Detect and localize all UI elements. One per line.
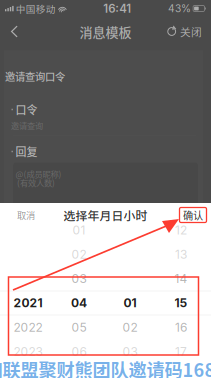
staticText: 2021 [13,296,42,310]
staticText: 14 [174,271,187,286]
staticText: 03 [122,344,137,359]
staticText: 02 [122,320,137,334]
staticText: 邀请查询口令 [5,69,65,84]
button[interactable]: Back [0,17,29,46]
staticText: 中国移动 [16,1,56,15]
staticText: 佣联盟聚财熊团队邀请码1688 [0,356,211,378]
staticText: 回复 [15,144,37,159]
staticText: 关闭 [180,24,202,39]
staticText: 16:41 [103,2,131,15]
staticText: 选择年月日小时 [63,206,147,224]
staticText: 05 [71,320,86,334]
staticText: 01 [72,223,85,237]
staticText: 04 [71,296,87,310]
staticText: 12 [175,223,187,237]
button[interactable]: 取消 [9,204,43,226]
staticText: 17 [175,344,187,359]
staticText: 01 [123,296,136,310]
staticText: 43% [168,2,191,15]
staticText: 15 [174,296,187,310]
staticText: 03 [71,271,86,286]
staticText: 口令 [15,102,37,117]
staticText: @(成员昵称) [15,168,61,180]
staticText: 16 [175,320,187,334]
staticText: 13 [175,247,187,262]
staticText: 取消 [17,208,35,222]
button[interactable]: 确认 [179,207,206,222]
staticText: 2023 [13,344,42,359]
staticText: 02 [71,247,86,262]
staticText: 06 [71,344,86,359]
staticText: (有效人数) [17,177,55,189]
button[interactable]: 关闭 [167,17,211,46]
staticText: 消息模板 [79,22,131,41]
staticText: 确认 [183,208,203,222]
staticText: 2022 [13,320,42,334]
staticText: 邀请查询 [11,120,43,131]
